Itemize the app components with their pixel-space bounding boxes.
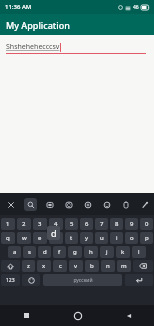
staticText: e (38, 234, 42, 242)
button[interactable]: Recents (0, 305, 52, 326)
staticText: s (28, 248, 31, 256)
staticText: o (130, 234, 134, 242)
button[interactable]: Backspace (133, 260, 153, 272)
staticText: русский (73, 277, 93, 284)
button[interactable]: 3 (33, 218, 47, 230)
button[interactable]: l (132, 246, 146, 258)
staticText: u (100, 234, 104, 242)
button[interactable]: p (140, 232, 153, 244)
staticText: 2 (22, 220, 26, 228)
staticText: Shshehehecccsv (6, 42, 60, 52)
staticText: d (51, 227, 57, 239)
button[interactable]: x (37, 260, 51, 272)
staticText: 7 (100, 220, 104, 228)
button[interactable]: z (22, 260, 35, 272)
staticText: x (42, 262, 46, 270)
staticText: 4 (54, 220, 58, 228)
button[interactable]: 0 (140, 218, 153, 230)
button[interactable]: a (8, 246, 21, 258)
staticText: k (121, 248, 125, 256)
staticText: l (138, 248, 140, 256)
button[interactable]: русский (43, 274, 122, 286)
button[interactable]: t (65, 232, 78, 244)
staticText: 5 (70, 220, 74, 228)
button[interactable]: k (116, 246, 130, 258)
button[interactable]: 5 (65, 218, 78, 230)
button[interactable]: Enter (125, 274, 153, 286)
button[interactable]: Clipboard (116, 193, 135, 215)
button[interactable]: b (85, 260, 99, 272)
staticText: t (70, 234, 73, 242)
button[interactable]: c (53, 260, 67, 272)
button[interactable]: m (117, 260, 131, 272)
button[interactable]: Search (20, 193, 40, 215)
staticText: g (73, 248, 77, 256)
button[interactable]: Settings (78, 193, 97, 215)
staticText: r (55, 234, 58, 242)
staticText: 123 (6, 277, 15, 284)
staticText: q (6, 234, 10, 242)
button[interactable]: Home (52, 305, 103, 326)
button[interactable]: h (84, 246, 98, 258)
staticText: b (90, 262, 94, 270)
button[interactable]: Theme (135, 193, 154, 215)
button[interactable]: y (80, 232, 93, 244)
button[interactable]: q (1, 232, 15, 244)
staticText: 1 (6, 220, 10, 228)
staticText: 3 (38, 220, 42, 228)
button[interactable]: Shift (1, 260, 20, 272)
staticText: f (58, 248, 61, 256)
button[interactable]: j (100, 246, 114, 258)
button[interactable]: w (17, 232, 31, 244)
staticText: d (43, 248, 47, 256)
button[interactable]: n (101, 260, 115, 272)
button[interactable]: o (125, 232, 138, 244)
staticText: 11:36 AM (5, 3, 32, 11)
button[interactable]: Emoji (97, 193, 116, 215)
staticText: 8 (115, 220, 119, 228)
button[interactable]: Close (0, 193, 20, 215)
button[interactable]: 7 (95, 218, 108, 230)
button[interactable]: 4 (49, 218, 63, 230)
button[interactable]: 123 (1, 274, 20, 286)
staticText: w (22, 234, 27, 242)
staticText: m (121, 262, 127, 270)
button[interactable]: u (95, 232, 108, 244)
staticText: a (13, 248, 17, 256)
button[interactable]: r (49, 232, 63, 244)
button[interactable]: d (38, 246, 51, 258)
staticText: z (27, 262, 30, 270)
button[interactable]: 9 (125, 218, 138, 230)
staticText: 6 (85, 220, 89, 228)
button[interactable]: i (110, 232, 123, 244)
button[interactable]: 1 (1, 218, 15, 230)
button[interactable]: GIF (59, 193, 78, 215)
staticText: v (74, 262, 78, 270)
button[interactable]: f (53, 246, 66, 258)
staticText: y (85, 234, 89, 242)
staticText: p (145, 234, 149, 242)
staticText: i (116, 234, 118, 242)
staticText: h (89, 248, 93, 256)
button[interactable]: Emoji (22, 274, 40, 286)
button[interactable]: Sticker (40, 193, 59, 215)
button[interactable]: s (23, 246, 36, 258)
button[interactable]: 8 (110, 218, 123, 230)
staticText: n (106, 262, 110, 270)
button[interactable]: 6 (80, 218, 93, 230)
button[interactable]: 2 (17, 218, 31, 230)
staticText: 0 (145, 220, 149, 228)
button[interactable]: Back (103, 305, 154, 326)
button[interactable]: g (68, 246, 82, 258)
staticText: My Application (6, 19, 70, 31)
staticText: j (106, 248, 108, 256)
staticText: c (59, 262, 62, 270)
staticText: 46 (133, 4, 139, 11)
staticText: 9 (130, 220, 134, 228)
button[interactable]: v (69, 260, 83, 272)
button[interactable]: e (33, 232, 47, 244)
